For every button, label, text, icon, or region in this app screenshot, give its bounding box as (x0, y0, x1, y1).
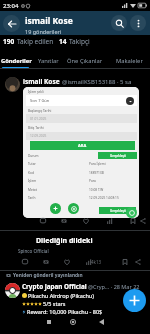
button[interactable]: Share (133, 257, 143, 267)
button[interactable]: Repost (41, 257, 51, 267)
staticText: 10:08 T.W (89, 188, 104, 192)
button[interactable]: Bookmark (128, 216, 138, 226)
staticText: 23:04 (3, 2, 19, 10)
staticText: 188971XB (89, 171, 104, 175)
staticText: Tutar (28, 162, 36, 166)
staticText: Para İşlemi (89, 162, 106, 166)
staticText: 12.09.2025 14:08:15 (89, 196, 119, 200)
button[interactable]: Repost (59, 216, 69, 226)
staticText: Başlangıç Tarihi (28, 109, 52, 113)
button[interactable]: Views (84, 257, 94, 267)
button[interactable]: Yeniden gönderil yayınlandın (6, 272, 83, 279)
staticText: Crypto Japan Official (22, 282, 87, 291)
button[interactable]: Makaleler (108, 52, 150, 69)
staticText: İşlem şekli (28, 90, 44, 94)
button[interactable]: Like (62, 257, 72, 267)
staticText: Takipçi (69, 37, 90, 46)
staticText: Dilediğin dildeki (36, 236, 93, 246)
button[interactable]: Gönderiler (0, 52, 32, 69)
button[interactable]: Reply (38, 216, 48, 226)
staticText: 01.01.2025 (30, 117, 47, 121)
button[interactable]: Share (138, 216, 148, 226)
staticText: ismail Kose (23, 77, 60, 86)
staticText: 14 (59, 37, 67, 46)
staticText: 12.09.2025 (30, 134, 47, 138)
button[interactable]: 190 (3, 37, 54, 46)
staticText: 4k13 (91, 259, 102, 265)
button[interactable]: Search (111, 15, 127, 31)
staticText: Makaleler (116, 57, 143, 65)
staticText: Reward: 10,000 Pikachu - 80$ (27, 308, 103, 315)
staticText: Tarih (28, 196, 36, 200)
staticText: Kod (28, 171, 34, 175)
button[interactable]: Compose post (123, 289, 146, 312)
staticText: @ismailKSB153188 · 5 sa (62, 78, 132, 86)
staticText: İşlem (28, 179, 37, 183)
staticText: 19 gönderileri (25, 28, 62, 35)
button[interactable]: Like (81, 216, 91, 226)
staticText: Metot (28, 188, 37, 192)
staticText: Gerçekleşti (110, 209, 126, 213)
button[interactable]: More options (130, 15, 146, 31)
staticText: Pikachu Airdrop (Pikachu) (28, 292, 94, 299)
staticText: ismail Kose (25, 15, 73, 27)
button[interactable]: Views (105, 216, 115, 226)
staticText: Öne Çıkanlar (67, 57, 103, 65)
button[interactable]: Back (96, 317, 106, 327)
staticText: 190 (3, 37, 15, 46)
button[interactable]: Back (3, 15, 20, 32)
staticText: Para (89, 179, 96, 183)
staticText: @Cryp... · 28 Mar 22 (88, 283, 140, 290)
button[interactable]: Home (68, 317, 78, 327)
staticText: Spinco Official (18, 248, 49, 254)
staticText: Son 7 Gün (30, 98, 50, 103)
button[interactable]: Bookmark (120, 257, 130, 267)
button[interactable]: Crypto Japan Official profile photo (5, 283, 20, 298)
button[interactable]: 14 (59, 37, 90, 46)
button[interactable]: Recent apps (44, 317, 54, 327)
button[interactable]: Reply (20, 257, 30, 267)
staticText: Takip edilen (17, 37, 54, 46)
staticText: Bitiş Tarihi (28, 126, 44, 130)
staticText: ARA (78, 143, 87, 148)
staticText: 5/5 stars (43, 300, 66, 307)
button[interactable]: Tweet image (23, 87, 139, 218)
staticText: Yeniden gönderil yayınlandın (13, 272, 83, 279)
staticText: Durum (28, 154, 39, 158)
button[interactable]: ismail Kose profile photo (5, 77, 20, 92)
button[interactable]: Yanıtlar (32, 52, 65, 69)
button[interactable]: Öne Çıkanlar (62, 52, 108, 69)
staticText: Yanıtlar (38, 57, 59, 65)
staticText: Gerçekleşti (110, 154, 126, 158)
staticText: Gönderiler (1, 57, 32, 65)
